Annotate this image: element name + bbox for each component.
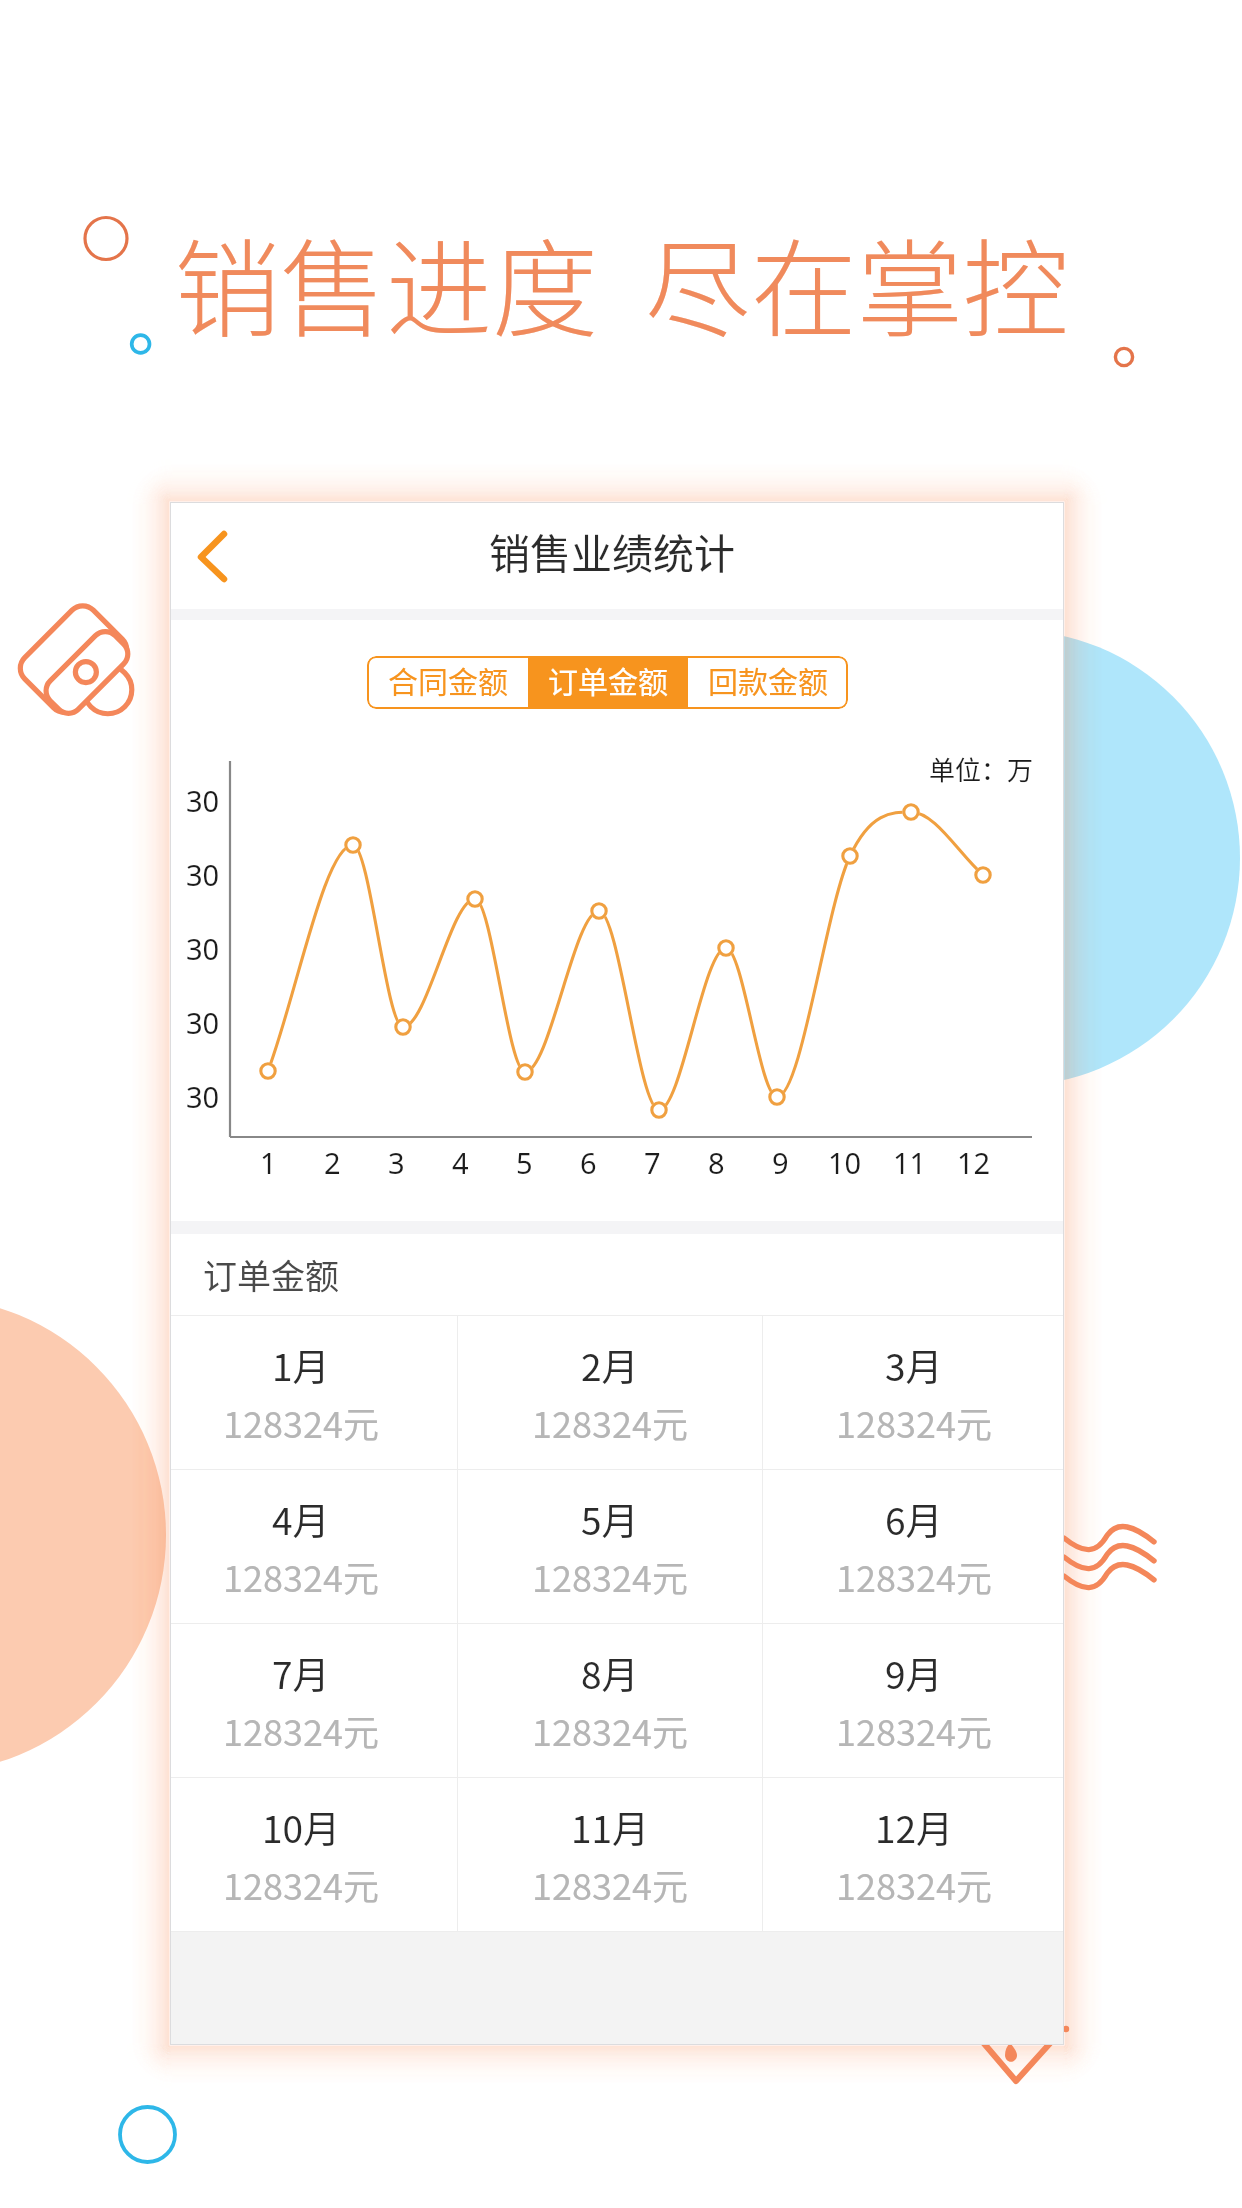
button[interactable]: 8月 <box>458 1624 762 1777</box>
button[interactable]: 2月 <box>458 1316 762 1469</box>
staticText: 8月 <box>581 1646 639 1700</box>
staticText: 销售进度 尽在掌控 <box>174 205 1069 358</box>
button[interactable]: 订单金额 <box>528 656 688 709</box>
button[interactable]: 11月 <box>458 1778 762 1931</box>
staticText: 11月 <box>571 1800 650 1854</box>
staticText: 4 <box>452 1143 469 1182</box>
staticText: 128324元 <box>532 1550 688 1602</box>
staticText: 128324元 <box>223 1550 379 1602</box>
staticText: 6月 <box>885 1492 943 1546</box>
staticText: 合同金额 <box>388 658 508 701</box>
staticText: 1 <box>260 1143 277 1182</box>
button[interactable]: 回款金额 <box>688 656 848 709</box>
staticText: 128324元 <box>532 1858 688 1910</box>
staticText: 128324元 <box>532 1704 688 1756</box>
button[interactable]: 合同金额 <box>367 656 528 709</box>
staticText: 订单金额 <box>548 658 668 701</box>
staticText: 30 <box>186 781 220 820</box>
staticText: 销售业绩统计 <box>489 521 735 580</box>
staticText: 8 <box>708 1143 725 1182</box>
staticText: 30 <box>186 929 220 968</box>
staticText: 2月 <box>581 1338 639 1392</box>
staticText: 128324元 <box>836 1550 992 1602</box>
staticText: 12月 <box>875 1800 954 1854</box>
staticText: 128324元 <box>223 1704 379 1756</box>
staticText: 128324元 <box>836 1396 992 1448</box>
button[interactable]: Back <box>180 510 270 600</box>
button[interactable]: 1月 <box>170 1316 457 1469</box>
staticText: 10月 <box>262 1800 341 1854</box>
button[interactable]: 12月 <box>763 1778 1064 1931</box>
staticText: 3月 <box>885 1338 943 1392</box>
button[interactable]: 5月 <box>458 1470 762 1623</box>
staticText: 128324元 <box>532 1396 688 1448</box>
staticText: 7 <box>644 1143 661 1182</box>
staticText: 6 <box>580 1143 597 1182</box>
staticText: 128324元 <box>836 1858 992 1910</box>
button[interactable]: 4月 <box>170 1470 457 1623</box>
staticText: 1月 <box>272 1338 330 1392</box>
staticText: 单位：万 <box>929 750 1034 788</box>
staticText: 9月 <box>885 1646 943 1700</box>
staticText: 128324元 <box>223 1396 379 1448</box>
staticText: 5 <box>516 1143 533 1182</box>
staticText: 2 <box>324 1143 341 1182</box>
staticText: 30 <box>186 855 220 894</box>
staticText: 3 <box>388 1143 405 1182</box>
button[interactable]: 3月 <box>763 1316 1064 1469</box>
staticText: 4月 <box>272 1492 330 1546</box>
staticText: 11 <box>893 1143 927 1182</box>
staticText: 订单金额 <box>203 1250 339 1299</box>
staticText: 10 <box>828 1143 862 1182</box>
staticText: 128324元 <box>836 1704 992 1756</box>
staticText: 回款金额 <box>708 658 828 701</box>
button[interactable]: 10月 <box>170 1778 457 1931</box>
button[interactable]: 9月 <box>763 1624 1064 1777</box>
staticText: 9 <box>772 1143 789 1182</box>
staticText: 128324元 <box>223 1858 379 1910</box>
staticText: 7月 <box>272 1646 330 1700</box>
staticText: 30 <box>186 1003 220 1042</box>
staticText: 30 <box>186 1077 220 1116</box>
button[interactable]: 7月 <box>170 1624 457 1777</box>
staticText: 5月 <box>581 1492 639 1546</box>
button[interactable]: 6月 <box>763 1470 1064 1623</box>
staticText: 12 <box>957 1143 991 1182</box>
